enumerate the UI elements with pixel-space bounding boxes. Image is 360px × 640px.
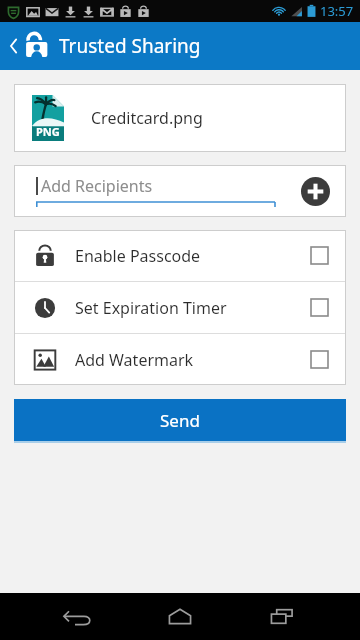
staticText: Set Expiration Timer xyxy=(75,297,227,319)
button[interactable]: Back xyxy=(7,35,20,57)
staticText: Send xyxy=(160,409,200,432)
button[interactable]: Send xyxy=(14,399,346,441)
staticText: Trusted Sharing xyxy=(59,33,201,59)
button[interactable]: Home xyxy=(156,593,204,640)
button[interactable]: Set Expiration Timer xyxy=(14,282,346,333)
staticText: Creditcard.png xyxy=(91,107,203,129)
button[interactable]: Add Watermark xyxy=(14,334,346,385)
button[interactable]: Add Recipients xyxy=(36,175,293,207)
button[interactable]: Back xyxy=(54,593,102,640)
staticText: Add Recipients xyxy=(41,175,153,197)
button[interactable]: Add recipient xyxy=(301,177,330,206)
button[interactable]: Enable Passcode xyxy=(14,230,346,281)
button[interactable]: Recent apps xyxy=(258,593,306,640)
staticText: Enable Passcode xyxy=(75,245,201,267)
staticText: Add Watermark xyxy=(75,349,194,371)
staticText: 13:57 xyxy=(320,2,354,20)
staticText: PNG xyxy=(36,124,60,139)
button[interactable]: PNG xyxy=(14,84,346,152)
